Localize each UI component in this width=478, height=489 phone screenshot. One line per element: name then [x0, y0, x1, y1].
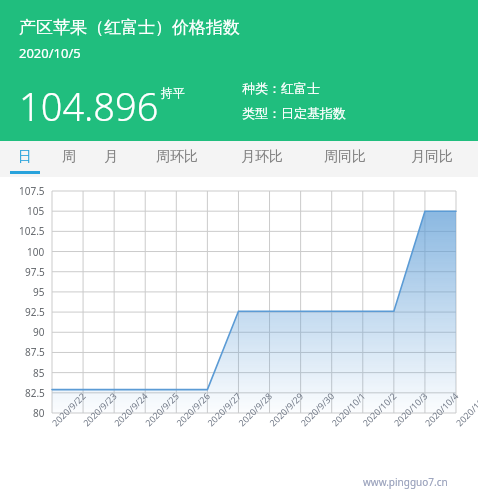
button[interactable]: 周环比: [144, 141, 210, 177]
staticText: 2020/10/5: [19, 44, 81, 62]
button[interactable]: 月环比: [229, 141, 295, 177]
button[interactable]: 周: [48, 141, 90, 177]
button[interactable]: 周同比: [312, 141, 378, 177]
staticText: 种类：红富士: [242, 80, 320, 96]
other: 价格指数走势图: [0, 177, 478, 489]
staticText: 周环比: [156, 148, 198, 166]
staticText: 持平: [161, 85, 185, 100]
button[interactable]: 日: [4, 141, 46, 177]
staticText: 104.896: [19, 80, 159, 132]
staticText: 月: [104, 148, 118, 166]
button[interactable]: 月同比: [399, 141, 465, 177]
staticText: 周同比: [324, 148, 366, 166]
staticText: 周: [62, 148, 76, 166]
button[interactable]: 月: [90, 141, 132, 177]
staticText: 月同比: [411, 148, 453, 166]
staticText: 日: [18, 148, 32, 166]
staticText: 类型：日定基指数: [242, 105, 346, 121]
staticText: 月环比: [241, 148, 283, 166]
staticText: 产区苹果（红富士）价格指数: [19, 17, 240, 38]
